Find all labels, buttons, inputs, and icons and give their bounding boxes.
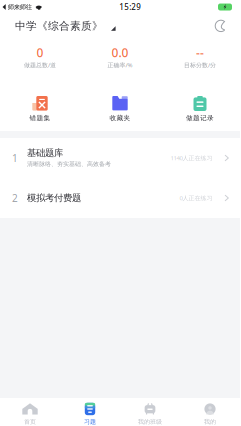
staticText: 错题集 xyxy=(29,114,50,122)
button[interactable]: Night mode xyxy=(210,15,232,37)
staticText: 2 xyxy=(12,191,18,205)
staticText: 我的班级 xyxy=(138,418,162,425)
staticText: 师来师往 xyxy=(8,3,32,11)
staticText: 首页 xyxy=(24,418,36,425)
staticText: 0 xyxy=(36,44,43,61)
staticText: 1 xyxy=(12,151,18,165)
staticText: 我的 xyxy=(204,418,216,425)
staticText: 1140人正在练习 xyxy=(170,154,212,162)
button[interactable]: 做题记录 xyxy=(160,96,240,122)
button[interactable]: 2 xyxy=(0,178,240,218)
staticText: 模拟考付费题 xyxy=(27,192,81,204)
staticText: 中学《综合素质》 xyxy=(15,19,103,33)
button[interactable]: 收藏夹 xyxy=(80,96,160,122)
staticText: 目标分数/分 xyxy=(184,61,216,69)
button[interactable]: 中学《综合素质》 xyxy=(15,19,116,33)
staticText: 做题总数/道 xyxy=(24,61,56,69)
staticText: -- xyxy=(196,44,204,61)
staticText: 清晰脉络、夯实基础、高效备考 xyxy=(27,160,111,168)
staticText: 0.0 xyxy=(111,44,128,61)
button[interactable]: 我的 xyxy=(180,403,240,425)
button[interactable]: 1 xyxy=(0,138,240,178)
staticText: 正确率/% xyxy=(107,61,132,69)
staticText: 习题 xyxy=(84,418,96,425)
button[interactable]: 我的班级 xyxy=(120,403,180,425)
button[interactable]: 错题集 xyxy=(0,96,80,122)
staticText: 基础题库 xyxy=(27,147,63,159)
staticText: 15:29 xyxy=(119,2,141,12)
button[interactable]: 习题 xyxy=(60,403,120,425)
staticText: 0人正在练习 xyxy=(179,194,212,202)
staticText: 做题记录 xyxy=(186,114,214,122)
staticText: 收藏夹 xyxy=(109,114,130,122)
button[interactable]: 首页 xyxy=(0,403,60,425)
